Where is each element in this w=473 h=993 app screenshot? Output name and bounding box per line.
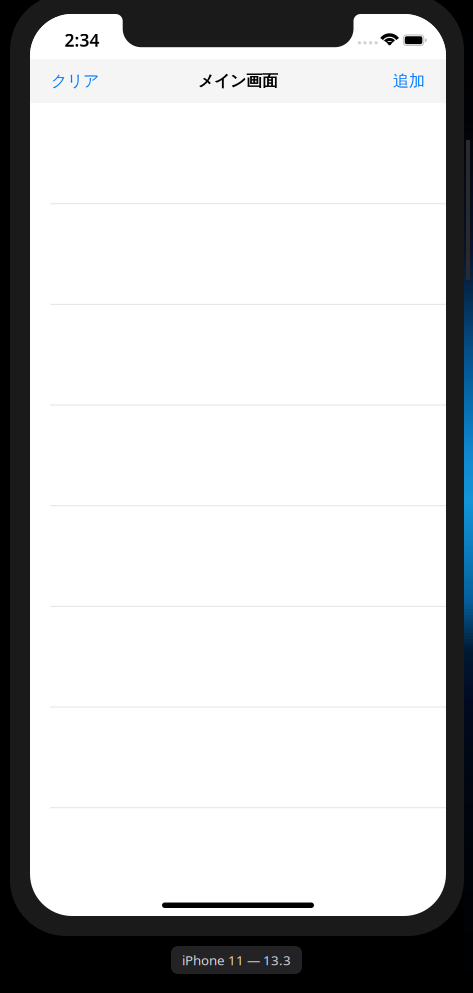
staticText: 追加 xyxy=(393,71,425,91)
button[interactable]: iPhone 11 — 13.3 xyxy=(171,946,302,974)
staticText: 2:34 xyxy=(64,28,99,51)
button[interactable]: クリア xyxy=(30,59,119,103)
button[interactable]: 追加 xyxy=(375,59,446,103)
staticText: iPhone 11 — 13.3 xyxy=(182,951,291,969)
staticText: メイン画面 xyxy=(198,71,278,91)
staticText: クリア xyxy=(51,71,99,91)
